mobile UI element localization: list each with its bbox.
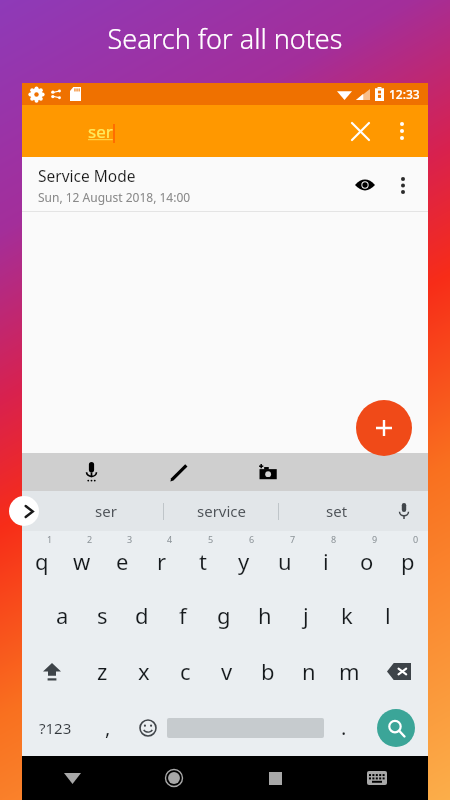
staticText: 0 [413,533,419,545]
button[interactable]: Search [377,709,415,747]
staticText: x [138,656,150,686]
staticText: w [73,546,91,576]
staticText: Sun, 12 August 2018, 14:00 [38,189,191,205]
button[interactable]: Preview [346,166,384,204]
button[interactable]: ser [48,491,164,531]
button[interactable]: x [123,643,165,699]
staticText: f [179,600,187,630]
staticText: p [401,546,415,576]
staticText: y [238,546,250,576]
button[interactable]: Back [22,756,123,800]
staticText: 6 [249,533,255,545]
staticText: q [35,546,49,576]
button[interactable]: d [122,587,162,643]
button[interactable]: Voice note [74,455,108,489]
button[interactable]: Switch keyboard [326,756,428,800]
staticText: . [341,714,347,741]
staticText: k [341,600,353,630]
button[interactable]: Note options [384,166,422,204]
staticText: n [302,656,316,686]
staticText: o [360,546,374,576]
button[interactable]: l [367,587,408,643]
staticText: 12:33 [389,86,420,102]
staticText: 4 [167,533,173,545]
button[interactable]: ?123 [22,699,88,756]
staticText: 8 [331,533,337,545]
button[interactable]: Expand [9,496,39,526]
button[interactable]: Home [123,756,224,800]
button[interactable]: a [42,587,82,643]
button[interactable]: k [326,587,367,643]
staticText: ?123 [39,718,72,738]
staticText: j [303,600,309,630]
button[interactable]: New note [356,400,412,456]
staticText: a [56,600,69,630]
staticText: r [157,546,167,576]
button[interactable]: 3 [102,531,142,587]
button[interactable]: h [244,587,285,643]
button[interactable]: Write note [162,455,196,489]
button[interactable]: z [81,643,123,699]
staticText: 7 [290,533,296,545]
button[interactable]: 5 [182,531,223,587]
button[interactable]: f [162,587,203,643]
staticText: ser [95,501,117,521]
button[interactable]: m [329,643,370,699]
staticText: d [135,600,149,630]
staticText: 3 [127,533,133,545]
button[interactable]: Backspace [370,643,428,699]
staticText: t [199,546,207,576]
button[interactable]: Voice input [390,497,418,525]
button[interactable]: Space [167,709,324,746]
staticText: e [116,546,129,576]
staticText: service [197,501,246,521]
staticText: 5 [208,533,214,545]
button[interactable]: 0 [387,531,428,587]
button[interactable]: , [88,699,128,756]
button[interactable]: c [165,643,206,699]
staticText: 9 [372,533,378,545]
button[interactable]: 1 [22,531,62,587]
staticText: ser [88,120,113,143]
button[interactable]: 4 [142,531,182,587]
button[interactable]: Recents [224,756,326,800]
staticText: 2 [87,533,93,545]
button[interactable]: set [279,491,394,531]
button[interactable]: Emoji [128,699,167,756]
button[interactable]: n [288,643,329,699]
staticText: , [105,714,111,741]
button[interactable]: service [164,491,279,531]
staticText: g [217,600,231,630]
staticText: s [97,600,108,630]
button[interactable]: . [324,699,363,756]
button[interactable]: Add photo [250,455,284,489]
button[interactable]: More options [382,111,422,151]
staticText: c [180,656,191,686]
button[interactable]: 7 [264,531,305,587]
button[interactable]: 6 [223,531,264,587]
staticText: b [261,656,275,686]
staticText: Search for all notes [0,20,450,57]
button[interactable]: 9 [346,531,387,587]
button[interactable]: v [206,643,247,699]
button[interactable]: s [82,587,122,643]
button[interactable]: Service Mode [22,157,428,212]
staticText: h [258,600,272,630]
staticText: u [278,546,292,576]
staticText: Service Mode [38,165,136,186]
staticText: set [326,501,348,521]
button[interactable]: b [247,643,288,699]
button[interactable]: Clear search [338,109,382,153]
button[interactable]: g [203,587,244,643]
staticText: m [339,656,360,686]
staticText: 1 [47,533,53,545]
button[interactable]: 8 [305,531,346,587]
staticText: i [323,546,329,576]
staticText: l [385,600,391,630]
button[interactable]: Shift [22,643,81,699]
button[interactable]: j [285,587,326,643]
staticText: v [221,656,233,686]
button[interactable]: 2 [62,531,102,587]
staticText: z [97,656,108,686]
